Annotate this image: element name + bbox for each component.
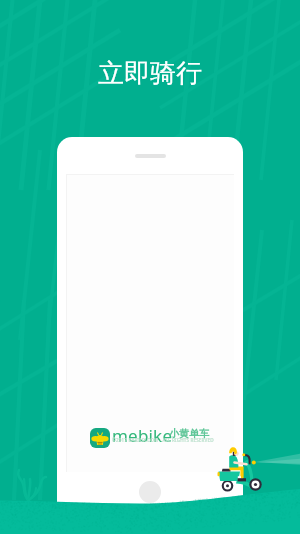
staticText: mebike bbox=[112, 424, 173, 447]
staticText: ©2017 BAIDUX.COM · ALL RIGHTS RESERVED bbox=[112, 437, 214, 443]
staticText: 小黄单车 bbox=[169, 427, 209, 440]
staticText: 立即骑行 bbox=[98, 57, 202, 90]
